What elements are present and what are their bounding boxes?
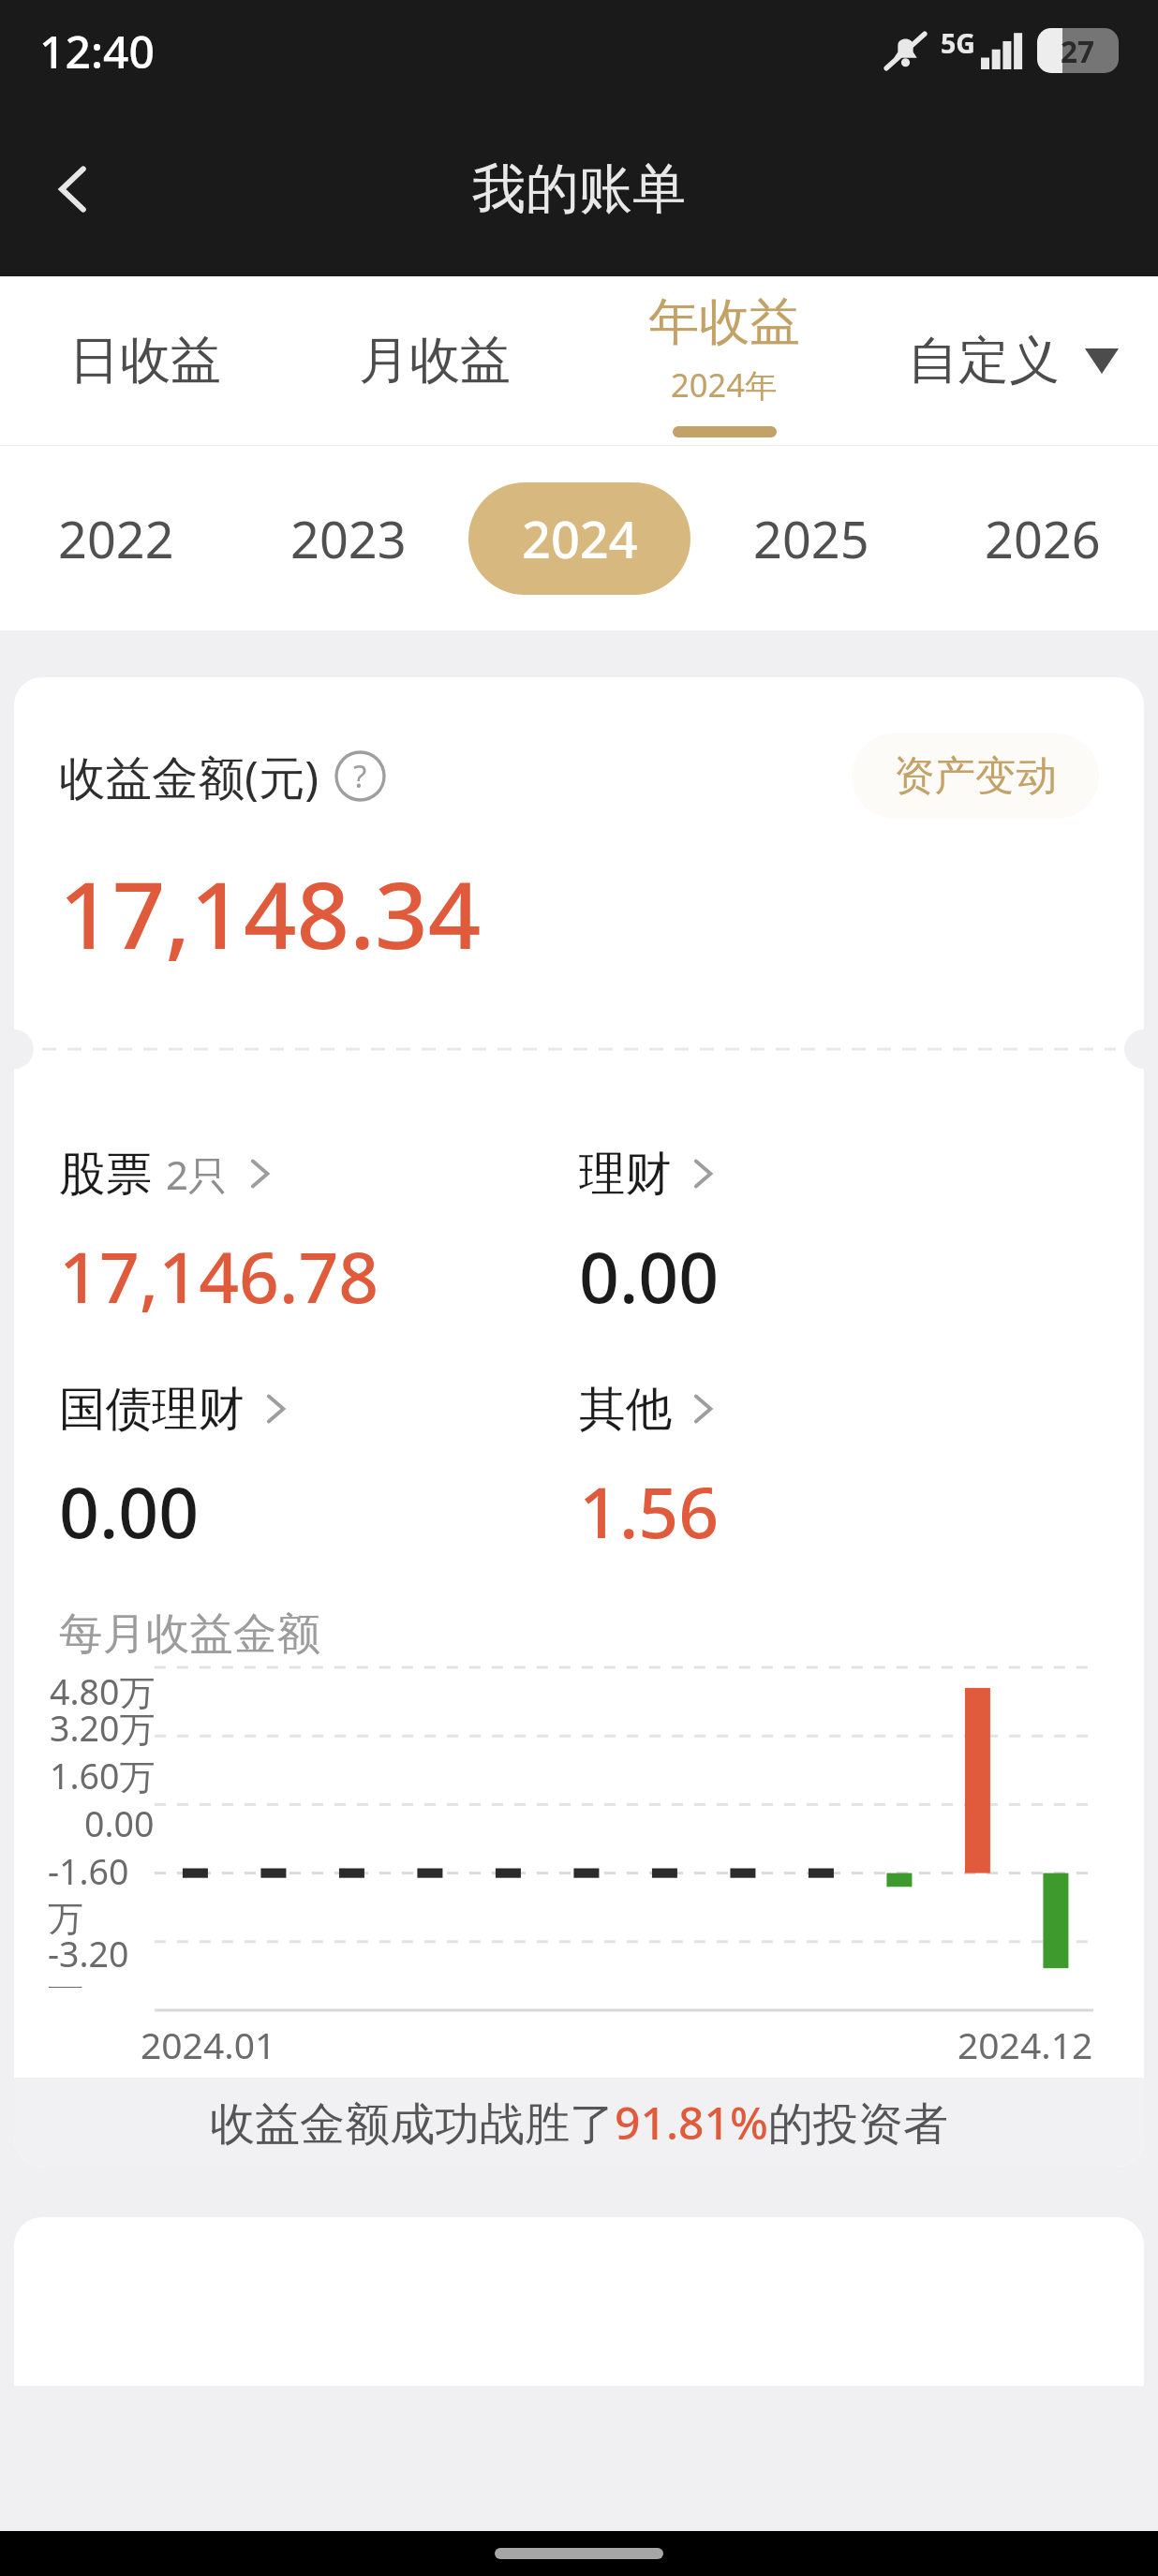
staticText: -1.60万 <box>48 1847 155 1941</box>
staticText: 0.00 <box>59 1463 200 1559</box>
button[interactable]: 年收益 <box>579 276 868 445</box>
staticText: 2024.01 <box>141 2020 276 2069</box>
staticText: 2022 <box>58 504 174 573</box>
staticText: 0.00 <box>579 1228 720 1324</box>
button[interactable]: 自定义 <box>868 276 1158 445</box>
button[interactable]: 说明 <box>334 749 387 803</box>
staticText: 每月收益金额 <box>59 1606 320 1662</box>
staticText: 2024 <box>522 504 638 573</box>
staticText: 4.80万 <box>50 1667 155 1715</box>
button[interactable]: 2022 <box>0 446 232 630</box>
button[interactable]: 日收益 <box>0 276 289 445</box>
button[interactable]: 其他 <box>579 1380 1099 1559</box>
button[interactable]: 2026 <box>927 446 1158 630</box>
staticText: 1.60万 <box>50 1752 155 1799</box>
staticText: 0.00 <box>84 1799 155 1847</box>
staticText: 股票 <box>59 1145 152 1203</box>
staticText: 1.56 <box>579 1463 720 1559</box>
staticText: 其他 <box>579 1380 672 1438</box>
button[interactable]: 理财 <box>579 1145 1099 1324</box>
staticText: ? <box>353 755 367 797</box>
button[interactable]: 月收益 <box>289 276 579 445</box>
staticText: 年收益 <box>648 290 800 354</box>
staticText: 自定义 <box>908 329 1060 392</box>
button[interactable]: 2025 <box>695 446 927 630</box>
staticText: 国债理财 <box>59 1380 245 1438</box>
button[interactable]: 2024 <box>468 482 690 595</box>
staticText: 17,146.78 <box>59 1228 379 1324</box>
staticText: 2023 <box>290 504 407 573</box>
staticText: 日收益 <box>69 329 221 392</box>
staticText: 5G <box>941 25 975 62</box>
staticText: 月收益 <box>359 329 511 392</box>
staticText: 27 <box>1061 31 1095 71</box>
button[interactable]: 资产变动 <box>852 733 1099 819</box>
staticText: 2024.12 <box>958 2020 1093 2069</box>
staticText: 2026 <box>985 504 1101 573</box>
staticText: 2025 <box>753 504 869 573</box>
button[interactable]: 股票 <box>59 1145 579 1324</box>
button[interactable]: 2023 <box>232 446 464 630</box>
button[interactable]: 国债理财 <box>59 1380 579 1559</box>
staticText: 收益金额(元) <box>59 745 319 808</box>
staticText: 资产变动 <box>894 750 1057 802</box>
staticText: 收益金额成功战胜了91.81%的投资者 <box>210 2092 948 2154</box>
staticText: 17,148.34 <box>59 850 482 976</box>
button[interactable]: Back <box>11 127 135 251</box>
staticText: 2024年 <box>671 363 778 407</box>
staticText: 理财 <box>579 1145 672 1203</box>
staticText: 2只 <box>166 1147 229 1201</box>
staticText: 我的账单 <box>472 155 686 223</box>
staticText: 12:40 <box>39 21 155 81</box>
staticText: -3.20万 <box>48 1930 155 1988</box>
staticText: 3.20万 <box>50 1704 155 1752</box>
